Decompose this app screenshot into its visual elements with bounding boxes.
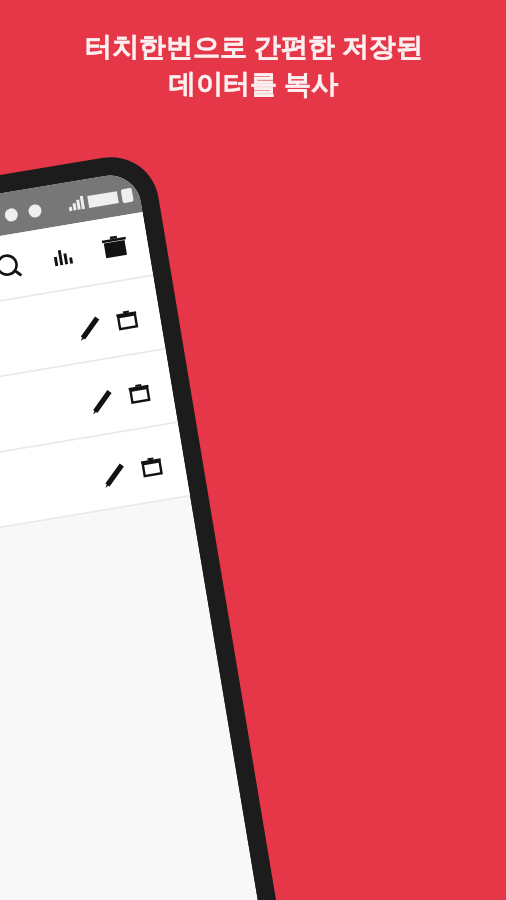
staticText: 데이터를 복사 [168,65,338,102]
staticText: 터치한번으로 간편한 저장된 [84,28,423,65]
